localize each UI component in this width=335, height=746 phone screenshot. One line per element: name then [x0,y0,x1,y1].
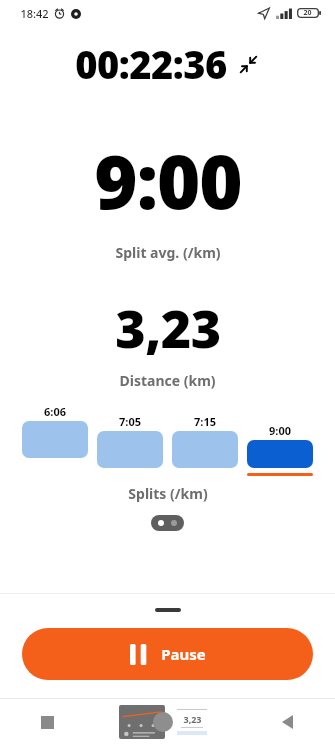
staticText: 7:15 [194,414,216,429]
button[interactable]: Back [239,698,335,746]
button[interactable]: 6:06 [22,404,88,476]
staticText: Split avg. (/km) [115,243,221,262]
staticText: 9:00 [94,130,242,231]
button[interactable]: 9:00 [247,404,313,476]
staticText: 00:22:36 [75,38,227,90]
staticText: Distance (km) [119,371,216,390]
staticText: Splits (/km) [128,484,208,503]
button[interactable]: 7:05 [97,404,163,476]
staticText: Pause [161,644,206,664]
button[interactable]: Page indicator [151,515,184,531]
staticText: 7:05 [119,414,141,429]
button[interactable]: 7:15 [172,404,238,476]
staticText: 20 [303,8,312,18]
button[interactable]: Collapse [235,51,261,77]
staticText: 9:00 [269,423,291,438]
button[interactable]: Pause [22,628,313,680]
staticText: 3,23 [115,292,221,363]
staticText: 18:42 [20,6,49,21]
staticText: 3,23 [183,713,202,725]
button[interactable]: Home [95,698,239,746]
staticText: 6:06 [44,404,66,419]
button[interactable]: Recents [0,698,95,746]
